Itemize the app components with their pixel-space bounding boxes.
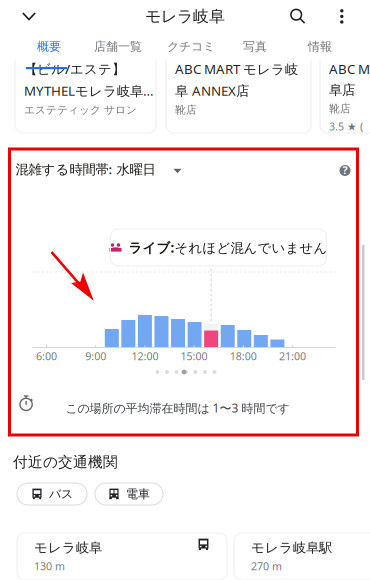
button[interactable]: ABC MART モレラ岐 xyxy=(166,46,311,133)
staticText: 12:00 xyxy=(131,349,158,363)
button[interactable]: Help xyxy=(339,165,350,176)
staticText: MYTHELモレラ岐阜… xyxy=(24,82,154,99)
staticText: 21:00 xyxy=(279,349,306,363)
button[interactable]: More options xyxy=(327,0,357,33)
button[interactable]: 【ビル/エステ】 xyxy=(15,46,156,133)
staticText: 情報 xyxy=(308,39,332,54)
staticText: 3.5 ★ ( xyxy=(329,119,363,133)
button[interactable]: 概要 xyxy=(14,33,84,60)
staticText: 靴店 xyxy=(175,103,197,117)
staticText: モレラ岐阜 xyxy=(34,540,102,556)
staticText: 靴店 xyxy=(329,102,351,115)
staticText: 15:00 xyxy=(181,349,208,363)
staticText: 9:00 xyxy=(85,349,106,363)
staticText: 付近の交通機関 xyxy=(13,453,118,471)
staticText: モレラ岐阜 xyxy=(145,7,225,26)
button[interactable]: モレラ岐阜駅 xyxy=(234,533,370,580)
staticText: 阜店 xyxy=(329,82,355,98)
staticText: ABC MART モレラ岐 xyxy=(175,60,298,78)
staticText: モレラ岐阜駅 xyxy=(251,540,332,556)
staticText: 130 m xyxy=(34,559,65,573)
staticText: 店舗一覧 xyxy=(94,39,142,54)
staticText: 阜 ANNEX店 xyxy=(175,82,249,99)
button[interactable]: バス xyxy=(17,483,87,505)
staticText: 6:00 xyxy=(36,349,57,363)
staticText: エステティック サロン xyxy=(24,103,137,117)
staticText: 混雑する時間帯: 水曜日 xyxy=(15,160,155,178)
staticText: 270 m xyxy=(251,559,282,573)
button[interactable]: 写真 xyxy=(220,33,290,60)
staticText: ? xyxy=(342,163,347,177)
staticText: 電車 xyxy=(126,487,150,501)
button[interactable]: Search xyxy=(281,0,315,33)
button[interactable]: モレラ岐阜 xyxy=(17,533,227,580)
staticText: 18:00 xyxy=(230,349,257,363)
staticText: 写真 xyxy=(243,39,267,54)
staticText: バス xyxy=(49,487,73,501)
staticText: 概要 xyxy=(37,39,61,54)
button[interactable]: 店舗一覧 xyxy=(83,33,153,60)
staticText: この場所の平均滞在時間は 1〜3 時間です xyxy=(65,400,289,416)
button[interactable]: 情報 xyxy=(285,33,355,60)
staticText: ライブ:それほど混んでいません xyxy=(128,239,327,256)
button[interactable]: Collapse xyxy=(9,0,49,33)
button[interactable]: ABC MART モレラ岐 xyxy=(320,46,370,133)
button[interactable]: 電車 xyxy=(95,483,163,505)
staticText: ABC MART モレラ岐 xyxy=(329,60,370,78)
staticText: クチコミ xyxy=(167,39,215,54)
button[interactable]: 混雑する時間帯: 水曜日 xyxy=(15,160,167,178)
button[interactable]: クチコミ xyxy=(156,33,226,60)
staticText: 【ビル/エステ】 xyxy=(24,60,125,78)
